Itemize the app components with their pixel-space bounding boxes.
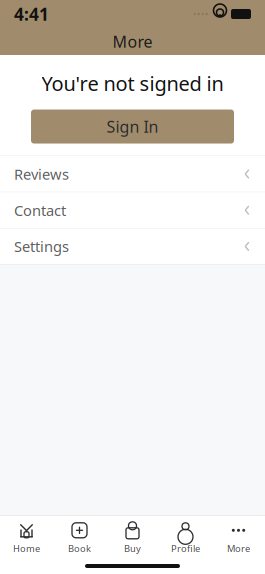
staticText: More <box>227 542 250 555</box>
button[interactable]: Contact <box>0 192 265 228</box>
staticText: You're not signed in <box>41 70 223 97</box>
staticText: Settings <box>14 237 69 256</box>
button[interactable]: Buy <box>106 518 159 558</box>
staticText: Buy <box>124 542 141 555</box>
button[interactable]: Profile <box>159 518 212 558</box>
staticText: Home <box>13 542 40 555</box>
button[interactable]: More <box>212 518 265 558</box>
staticText: More <box>112 31 152 52</box>
button[interactable]: Reviews <box>0 156 265 192</box>
staticText: Sign In <box>106 116 158 137</box>
button[interactable]: Sign In <box>31 110 234 144</box>
button[interactable]: Settings <box>0 229 265 264</box>
staticText: Contact <box>14 200 66 220</box>
staticText: Book <box>68 542 91 555</box>
staticText: Profile <box>171 542 200 555</box>
staticText: 4:41 <box>14 2 49 25</box>
staticText: Reviews <box>14 164 69 184</box>
button[interactable]: Home <box>0 518 53 558</box>
button[interactable]: Book <box>53 518 106 558</box>
